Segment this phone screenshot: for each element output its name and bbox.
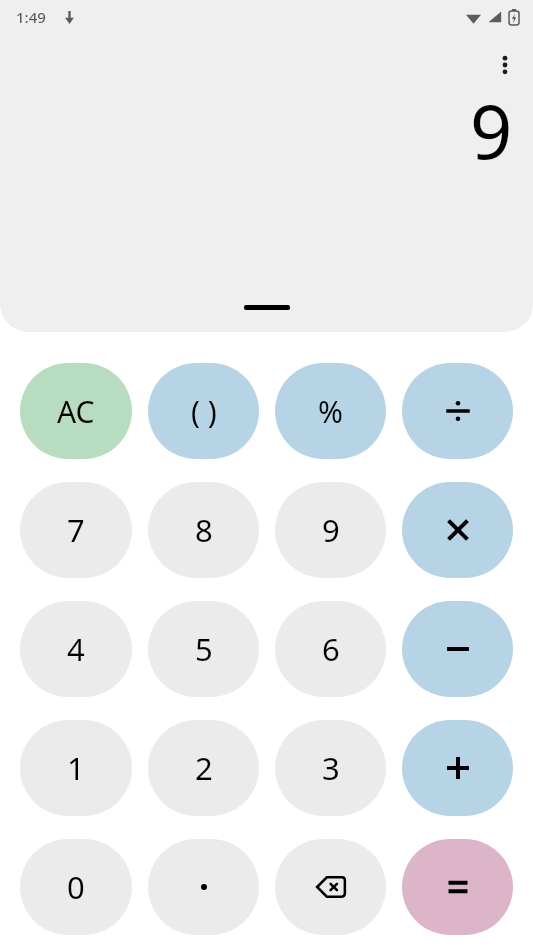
staticText: 7 [67,509,85,551]
staticText: 2 [195,747,213,789]
button[interactable]: Multiply [402,482,513,578]
button[interactable]: Plus [402,720,513,816]
staticText: 5 [195,628,213,670]
button[interactable]: 1 [20,720,132,816]
staticText: 6 [322,628,340,670]
button[interactable]: 6 [275,601,386,697]
staticText: ( ) [191,391,217,432]
staticText: 8 [195,509,213,551]
staticText: AC [57,391,95,432]
button[interactable]: 7 [20,482,132,578]
button[interactable]: Backspace [275,839,386,935]
button[interactable]: 3 [275,720,386,816]
button[interactable]: Equals [402,839,513,935]
button[interactable]: Divide [402,363,513,459]
button[interactable] [244,305,290,310]
button[interactable]: AC [20,363,132,459]
button[interactable]: % [275,363,386,459]
button[interactable]: Minus [402,601,513,697]
button[interactable]: 9 [275,482,386,578]
staticText: 0 [67,866,85,908]
button[interactable]: More options [483,43,527,87]
staticText: 3 [322,747,340,789]
button[interactable]: ( ) [148,363,259,459]
staticText: 4 [67,628,85,670]
staticText: 9 [470,80,513,181]
staticText: % [318,391,343,432]
staticText: 1 [67,747,85,789]
button[interactable]: 8 [148,482,259,578]
staticText: 1:49 [16,7,46,27]
button[interactable]: 4 [20,601,132,697]
button[interactable]: Decimal point [148,839,259,935]
button[interactable]: 5 [148,601,259,697]
button[interactable]: 0 [20,839,132,935]
staticText: 9 [322,509,340,551]
button[interactable]: 2 [148,720,259,816]
